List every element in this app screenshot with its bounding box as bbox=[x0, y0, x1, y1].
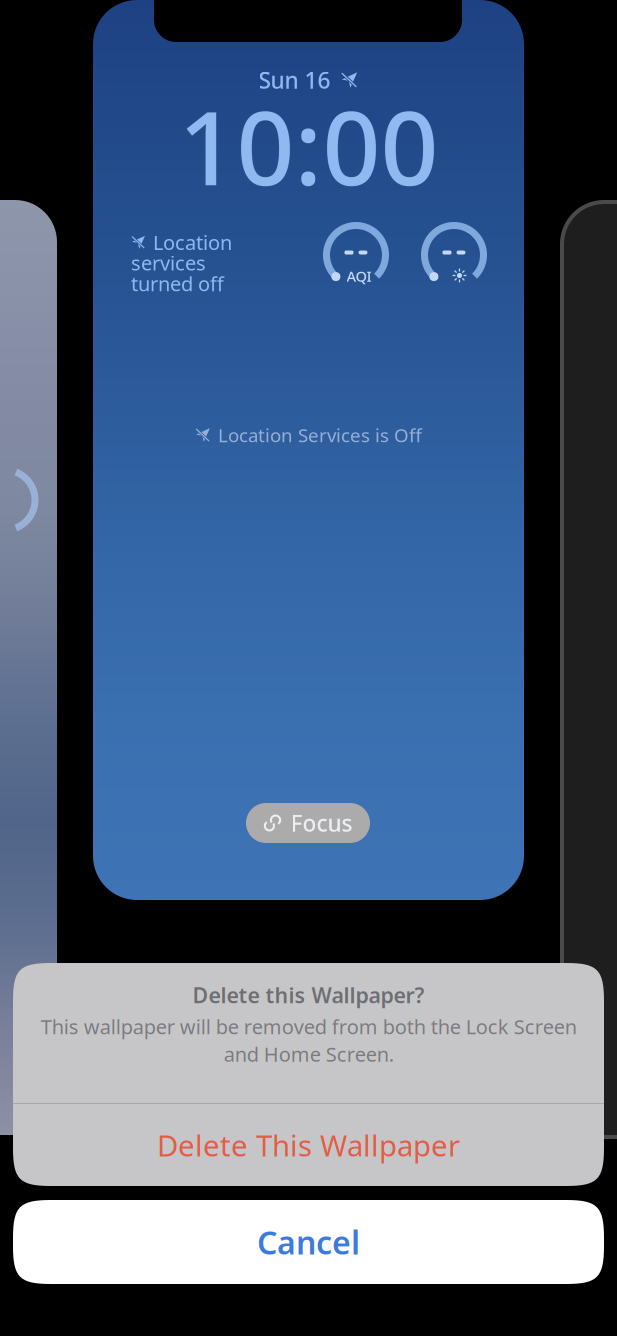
staticText: services bbox=[131, 250, 206, 276]
staticText: turned off bbox=[131, 270, 224, 297]
staticText: Location Services is Off bbox=[218, 423, 422, 447]
staticText: Delete This Wallpaper bbox=[157, 1125, 460, 1164]
staticText: Cancel bbox=[257, 1221, 360, 1263]
button[interactable]: Cancel bbox=[13, 1200, 604, 1284]
staticText: Location bbox=[153, 229, 232, 256]
staticText: Sun 16 bbox=[258, 65, 330, 95]
button[interactable]: Delete This Wallpaper bbox=[13, 1104, 604, 1186]
staticText: AQI bbox=[346, 266, 371, 286]
staticText: Delete this Wallpaper? bbox=[192, 981, 424, 1009]
staticText: Focus bbox=[290, 808, 352, 838]
staticText: This wallpaper will be removed from both… bbox=[40, 1013, 576, 1067]
staticText: 10:00 bbox=[178, 79, 438, 213]
